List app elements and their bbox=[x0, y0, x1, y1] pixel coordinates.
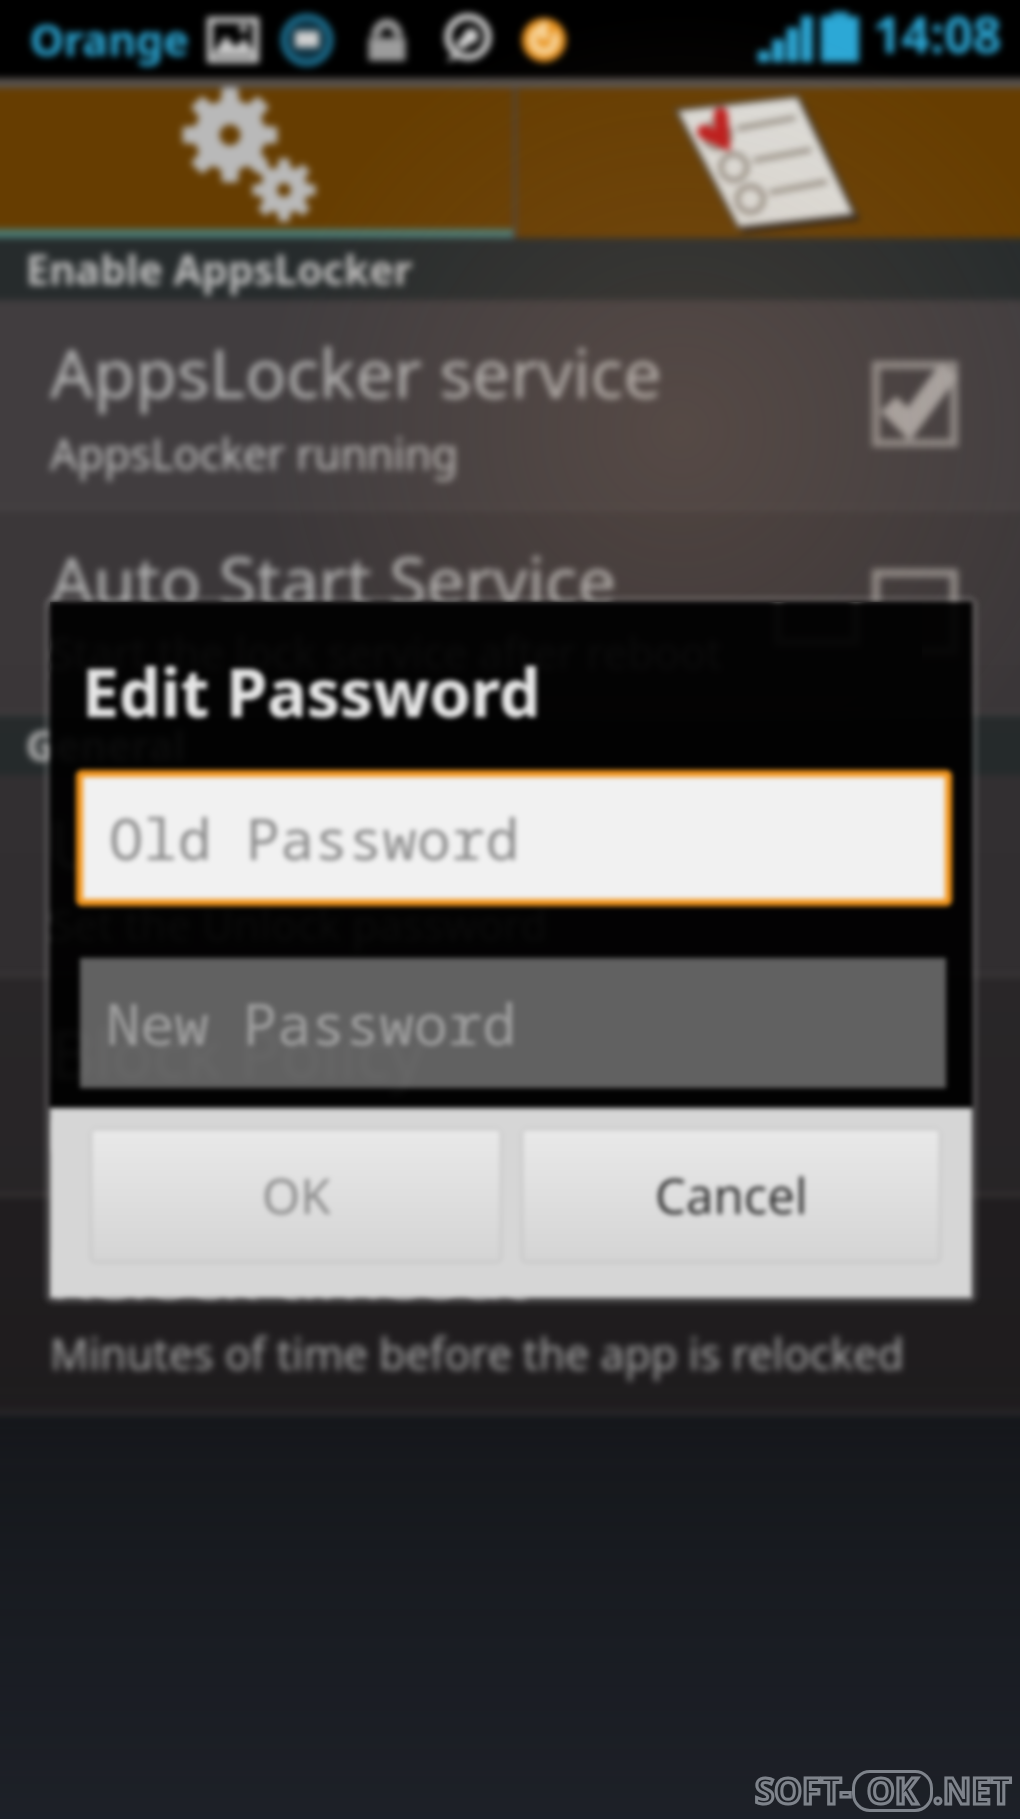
button[interactable]: Block Policy bbox=[0, 976, 1020, 1194]
staticText: Start the lock service after reboot bbox=[50, 632, 722, 691]
staticText: Orange bbox=[30, 10, 189, 69]
button[interactable]: Rules tab bbox=[517, 88, 1020, 238]
staticText: .NET bbox=[933, 1767, 1012, 1815]
staticText: OK bbox=[262, 1162, 331, 1229]
staticText: New Password bbox=[106, 984, 517, 1062]
button[interactable]: Settings tab bbox=[0, 88, 513, 238]
button[interactable]: Cancel bbox=[521, 1128, 941, 1263]
staticText: Old Password bbox=[109, 799, 520, 877]
button[interactable]: Auto Start Service bbox=[0, 510, 1020, 713]
staticText: 14:08 bbox=[873, 0, 1002, 68]
staticText: Unlock password bbox=[50, 796, 596, 889]
staticText: Edit Password bbox=[82, 646, 541, 736]
button[interactable]: OK bbox=[90, 1128, 502, 1263]
staticText: OK bbox=[867, 1767, 918, 1815]
staticText: Minutes of time before the app is relock… bbox=[50, 1324, 905, 1383]
staticText: General bbox=[26, 717, 186, 773]
staticText: Block Policy bbox=[50, 1006, 425, 1099]
staticText: Relock timeout bbox=[50, 1225, 528, 1318]
staticText: Enable AppsLocker bbox=[26, 241, 413, 297]
staticText: AppsLocker service bbox=[50, 325, 662, 418]
button[interactable]: Relock timeout bbox=[0, 1196, 1020, 1412]
staticText: Auto Start Service bbox=[50, 602, 617, 617]
button[interactable]: New Password bbox=[80, 958, 946, 1088]
staticText: SOFT- bbox=[755, 1767, 852, 1815]
button[interactable]: Old Password bbox=[83, 777, 945, 899]
staticText: AppsLocker running bbox=[50, 424, 458, 483]
staticText: Auto Start Service bbox=[50, 533, 617, 626]
staticText: Block policy bbox=[50, 1105, 288, 1164]
staticText: Cancel bbox=[655, 1162, 808, 1229]
button[interactable]: Auto Start Service bbox=[50, 602, 922, 696]
button[interactable]: AppsLocker service bbox=[0, 300, 1020, 508]
staticText: Start the lock service after reboot bbox=[50, 623, 722, 682]
button[interactable]: Unlock password bbox=[0, 775, 1020, 974]
staticText: Set the Unlock password bbox=[50, 895, 547, 954]
